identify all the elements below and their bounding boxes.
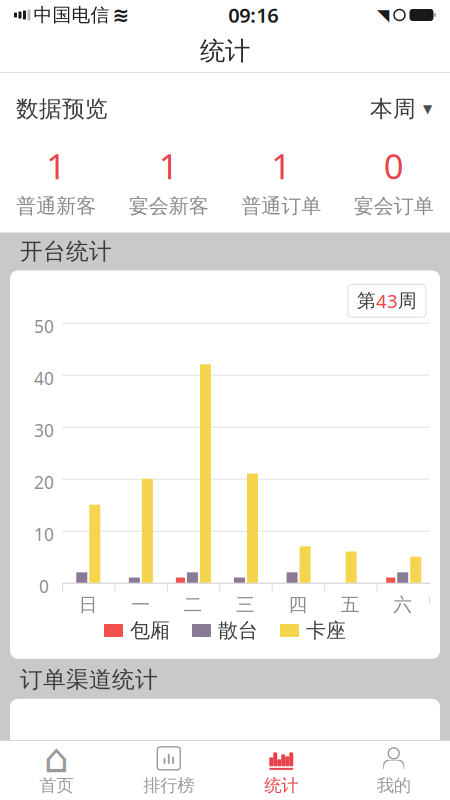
button[interactable]: 本周 [368,91,434,127]
staticText: 首页 [39,775,73,796]
staticText: 数据预览 [16,95,108,123]
staticText: ▼ [423,102,432,116]
staticText: 1 [271,143,291,189]
button[interactable]: 我的 [337,739,450,800]
staticText: 50 [34,315,54,338]
staticText: 周 [398,289,417,312]
staticText: 统计 [200,35,250,66]
button[interactable]: 统计 [225,739,337,800]
button[interactable]: ⌂ [0,739,112,800]
staticText: 二 [184,593,203,616]
staticText: 三 [236,593,255,616]
staticText: 1 [46,143,66,189]
staticText: 0 [384,143,404,189]
staticText: 普通订单 [241,194,321,218]
staticText: 包厢 [130,618,170,643]
staticText: 五 [341,593,360,616]
staticText: ≋ [112,4,129,26]
staticText: 六 [393,593,412,616]
staticText: 1 [159,143,179,189]
button[interactable]: 第 [348,284,426,317]
staticText: 统计 [264,775,298,796]
staticText: 中国电信 [33,3,109,26]
staticText: 10 [34,523,54,546]
staticText: 订单渠道统计 [20,666,158,694]
staticText: 普通新客 [16,194,96,218]
staticText: 一 [131,593,150,616]
staticText: 散台 [218,618,258,643]
staticText: 本周 [370,95,416,123]
staticText: 日 [79,593,98,616]
staticText: ⌂ [44,736,69,781]
staticText: 卡座 [306,618,346,643]
staticText: 40 [34,367,54,390]
staticText: 43 [376,288,398,313]
staticText: 排行榜 [143,775,194,796]
staticText: ◥ [377,6,389,24]
staticText: 开台统计 [20,237,112,265]
staticText: 四 [288,593,307,616]
staticText: 宴会新客 [129,194,209,218]
staticText: 30 [34,419,54,442]
button[interactable]: 排行榜 [112,739,225,800]
staticText: 0 [39,575,49,598]
staticText: 第 [357,289,376,312]
staticText: 我的 [377,775,411,796]
staticText: 20 [34,471,54,494]
staticText: 09:16 [228,2,278,28]
staticText: 宴会订单 [354,194,434,218]
